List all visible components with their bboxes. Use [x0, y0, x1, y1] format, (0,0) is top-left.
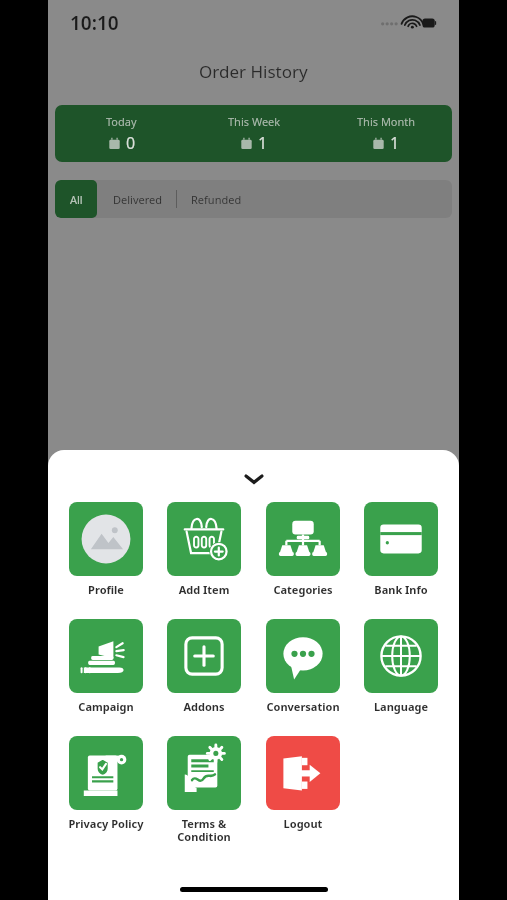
button[interactable]: All [55, 180, 97, 218]
staticText: 0 [126, 132, 136, 154]
button[interactable]: Campaign [62, 619, 150, 714]
staticText: 1 [390, 132, 400, 154]
staticText: Add Item [160, 582, 248, 597]
staticText: Profile [62, 582, 150, 597]
other: Addons [167, 619, 241, 693]
button[interactable]: Logout [259, 736, 347, 831]
staticText: Campaign [62, 699, 150, 714]
button[interactable]: Refunded [191, 192, 242, 207]
staticText: Today [106, 114, 137, 129]
staticText: Language [357, 699, 445, 714]
staticText: Bank Info [357, 582, 445, 597]
staticText: 1 [258, 132, 268, 154]
other: Campaign [69, 619, 143, 693]
other: Add Item [167, 502, 241, 576]
other: Categories [266, 502, 340, 576]
staticText: All [70, 192, 83, 207]
button[interactable]: Categories [259, 502, 347, 597]
other: Terms & Condition [167, 736, 241, 810]
button[interactable]: Privacy Policy [62, 736, 150, 831]
staticText: Terms & Condition [160, 816, 248, 844]
staticText: This Week [228, 114, 281, 129]
staticText: Addons [160, 699, 248, 714]
staticText: Conversation [259, 699, 347, 714]
staticText: This Month [357, 114, 416, 129]
button[interactable]: Collapse [48, 470, 459, 488]
staticText: Logout [259, 816, 347, 831]
button[interactable]: Profile [62, 502, 150, 597]
other: Bank Info [364, 502, 438, 576]
button[interactable]: Bank Info [357, 502, 445, 597]
button[interactable]: Delivered [113, 192, 162, 207]
other: Language [364, 619, 438, 693]
other: Conversation [266, 619, 340, 693]
button[interactable]: Addons [160, 619, 248, 714]
staticText: Order History [199, 60, 308, 83]
staticText: 10:10 [70, 10, 119, 36]
button[interactable]: Language [357, 619, 445, 714]
button[interactable]: Terms & Condition [160, 736, 248, 844]
other: Logout [266, 736, 340, 810]
button[interactable]: Add Item [160, 502, 248, 597]
other: Privacy Policy [69, 736, 143, 810]
other: Profile [69, 502, 143, 576]
staticText: Categories [259, 582, 347, 597]
button[interactable]: Conversation [259, 619, 347, 714]
staticText: Privacy Policy [62, 816, 150, 831]
button[interactable]: Today [55, 105, 452, 162]
